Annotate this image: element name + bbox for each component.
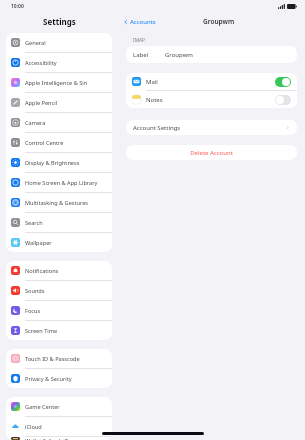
staticText: Accessibility [25,59,57,67]
button[interactable]: Mail on [275,77,291,87]
button[interactable]: Notes [126,91,297,108]
staticText: Touch ID & Passcode [25,355,80,363]
staticText: Apple Intelligence & Siri [25,79,88,87]
staticText: Search [25,219,43,227]
staticText: Camera [25,119,46,127]
staticText: Privacy & Security [25,375,72,383]
button[interactable]: Wallet & Apple Pay [6,437,112,440]
button[interactable]: Display & Brightness [6,153,112,172]
staticText: Notes [146,96,163,104]
button[interactable]: Camera [6,113,112,132]
staticText: Mail [146,78,158,86]
button[interactable]: Wallpaper [6,233,112,252]
staticText: Home Screen & App Library [25,179,98,187]
button[interactable]: Label [126,46,297,63]
staticText: Sounds [25,287,45,295]
staticText: Groupwm [203,17,235,26]
button[interactable]: Control Centre [6,133,112,152]
staticText: Delete Account [190,149,233,157]
button[interactable]: Apple Pencil [6,93,112,112]
button[interactable]: Search [6,213,112,232]
staticText: Wallet & Apple Pay [25,437,75,440]
button[interactable]: Sounds [6,281,112,300]
staticText: Display & Brightness [25,159,80,167]
button[interactable]: Account Settings [126,120,297,135]
staticText: Notifications [25,267,59,275]
staticText: Game Center [25,403,60,411]
staticText: 10:00 [11,3,24,10]
staticText: IMAP [133,37,145,44]
staticText: Apple Pencil [25,99,58,107]
staticText: Groupwm [165,51,193,59]
staticText: Account Settings [133,124,181,132]
button[interactable]: Delete Account [126,145,297,160]
button[interactable]: Home Screen & App Library [6,173,112,192]
button[interactable]: Multitasking & Gestures [6,193,112,212]
button[interactable]: Touch ID & Passcode [6,349,112,368]
staticText: Multitasking & Gestures [25,199,89,207]
button[interactable]: Game Center [6,397,112,416]
button[interactable]: Accounts [123,18,156,26]
staticText: Label [133,51,149,59]
button[interactable]: iCloud [6,417,112,436]
button[interactable]: Privacy & Security [6,369,112,388]
staticText: Settings [43,16,76,27]
staticText: Screen Time [25,327,58,335]
button[interactable]: Notifications [6,261,112,280]
button[interactable]: Mail [126,73,297,90]
staticText: Focus [25,307,41,315]
staticText: Control Centre [25,139,64,147]
button[interactable]: Notes off [275,95,291,105]
button[interactable]: Screen Time [6,321,112,340]
button[interactable]: Focus [6,301,112,320]
button[interactable]: Apple Intelligence & Siri [6,73,112,92]
button[interactable]: General [6,33,112,52]
staticText: Wallpaper [25,239,52,247]
staticText: iCloud [25,423,42,431]
staticText: General [25,39,46,47]
button[interactable]: Accessibility [6,53,112,72]
staticText: Accounts [130,18,156,26]
